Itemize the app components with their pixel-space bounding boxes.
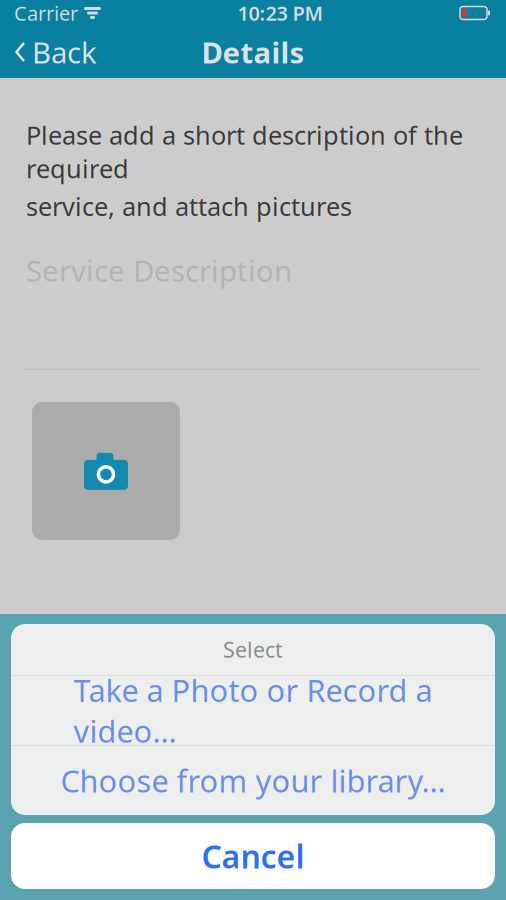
staticText: Back [32, 32, 97, 71]
staticText: Take a Photo or Record a video... [73, 670, 432, 751]
staticText: Carrier [14, 0, 78, 26]
staticText: Select [223, 635, 283, 664]
staticText: Details [201, 32, 304, 71]
button[interactable]: Add photo [32, 402, 180, 540]
staticText: 10:23 PM [237, 0, 323, 26]
staticText: Service Description [26, 251, 292, 290]
staticText: Cancel [201, 835, 304, 877]
button[interactable]: Take a Photo or Record a video... [11, 676, 495, 745]
button[interactable]: Cancel [11, 823, 495, 889]
button[interactable]: Back [0, 26, 107, 78]
staticText: Please add a short description of the re… [26, 118, 463, 185]
staticText: service, and attach pictures [26, 189, 352, 223]
staticText: Choose from your library... [60, 760, 445, 801]
button[interactable]: Choose from your library... [11, 746, 495, 815]
